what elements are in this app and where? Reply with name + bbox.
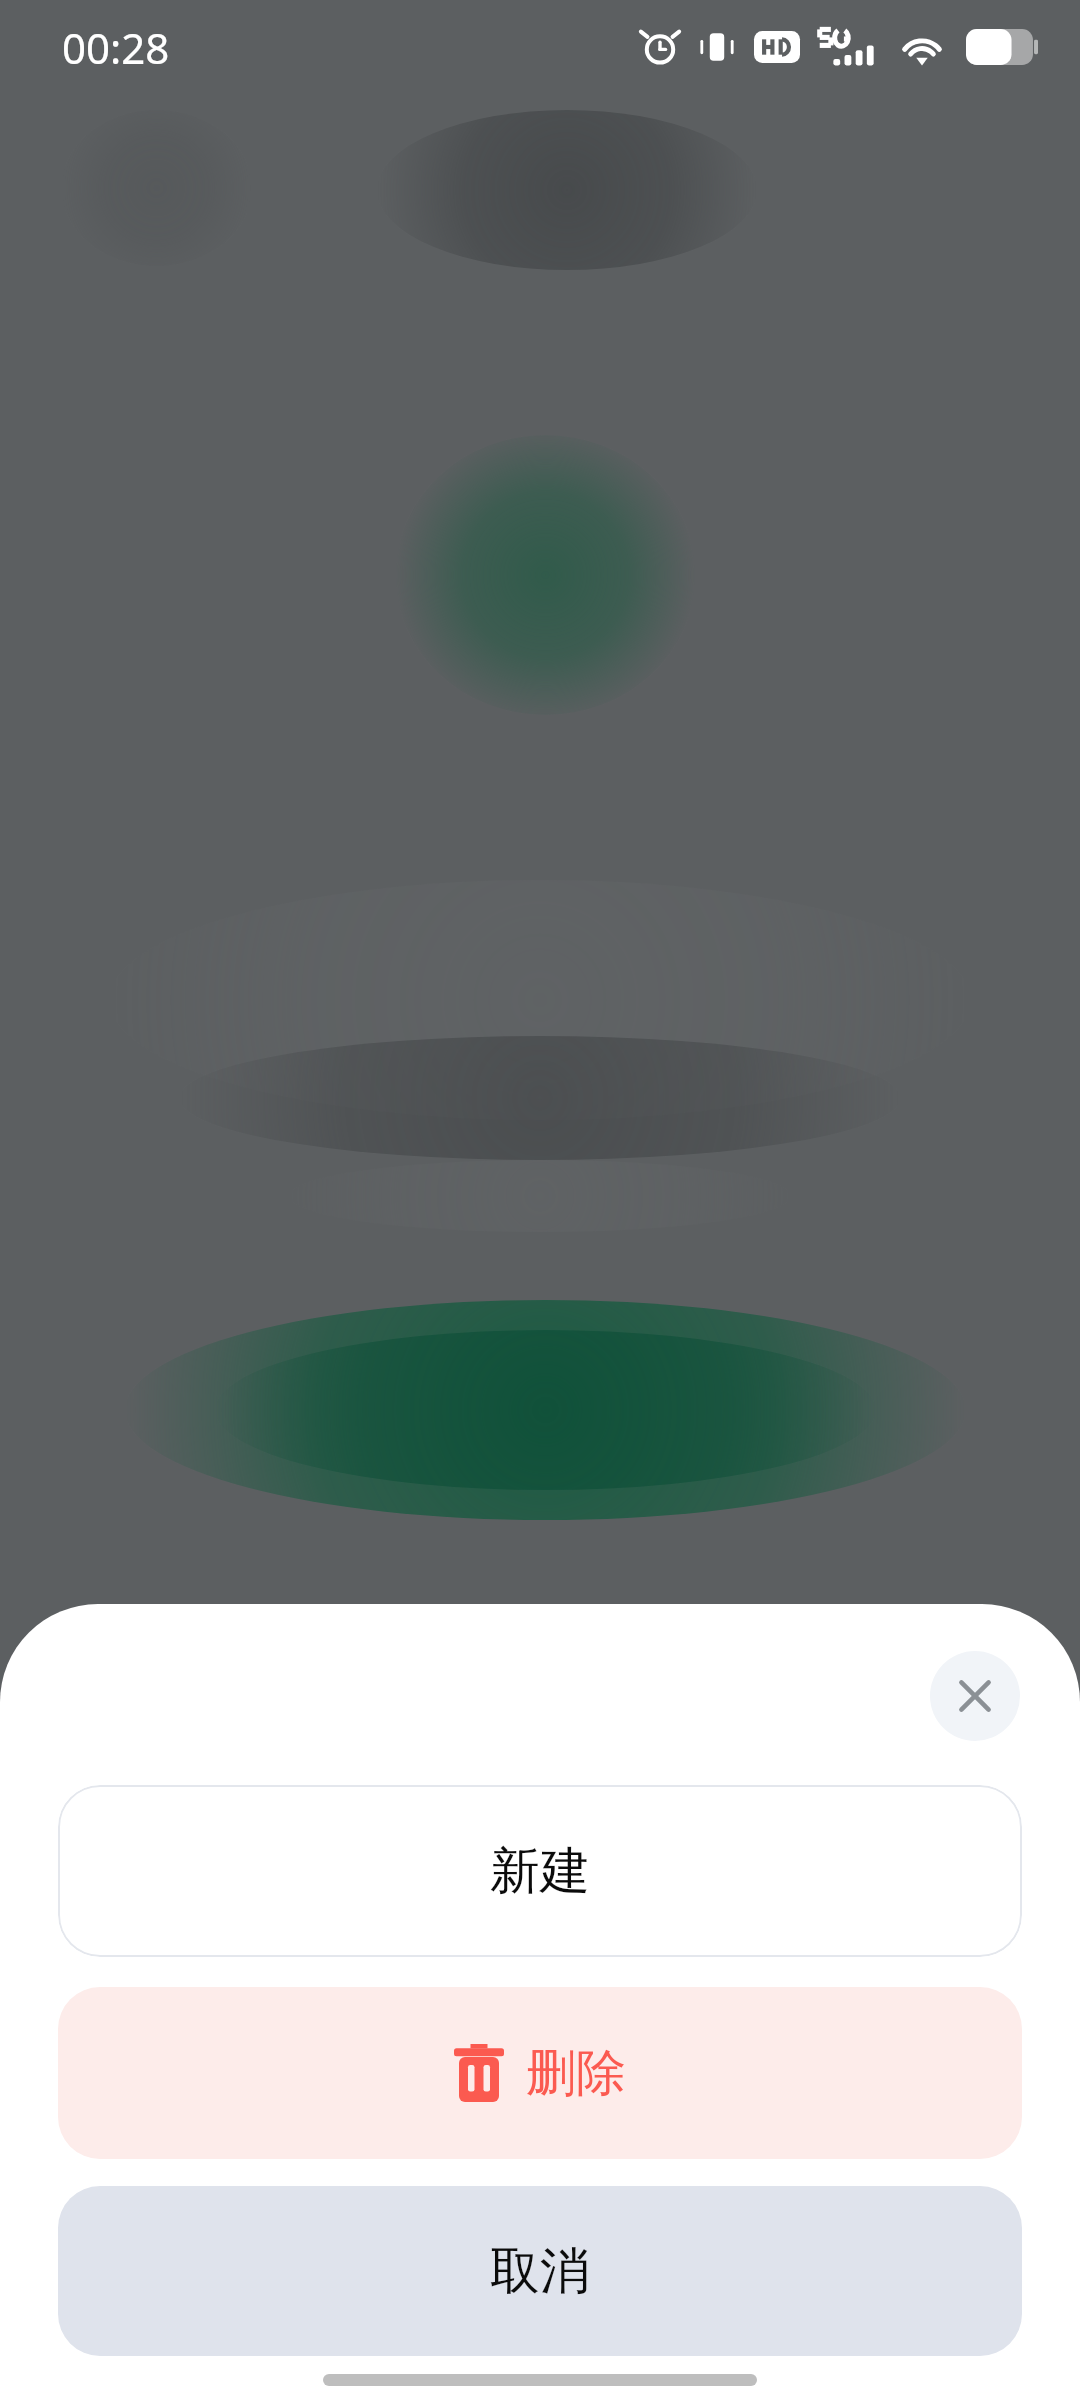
button[interactable]: 取消 [58, 2186, 1022, 2356]
staticText: 删除 [526, 2042, 626, 2105]
button[interactable]: 新建 [58, 1785, 1022, 1957]
button[interactable]: 关闭 [930, 1651, 1020, 1741]
staticText: 00:28 [62, 19, 170, 76]
button[interactable]: 删除 [58, 1987, 1022, 2159]
staticText: 取消 [490, 2240, 590, 2303]
staticText: 新建 [490, 1840, 590, 1903]
